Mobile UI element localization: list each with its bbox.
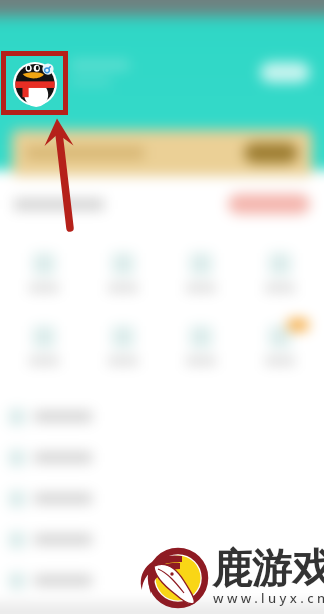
button[interactable]: [9, 560, 315, 601]
button[interactable]: [88, 309, 158, 382]
button[interactable]: [166, 236, 236, 309]
staticText: www.luyx.cn: [213, 589, 324, 607]
button[interactable]: [9, 519, 315, 560]
button[interactable]: [228, 194, 310, 214]
button[interactable]: Highlight avatar: [1, 51, 68, 115]
button[interactable]: [166, 309, 236, 382]
button[interactable]: [245, 309, 315, 382]
button[interactable]: [260, 62, 310, 83]
button[interactable]: [9, 309, 79, 382]
button[interactable]: [9, 236, 79, 309]
button[interactable]: User avatar: [13, 62, 57, 106]
button[interactable]: [88, 236, 158, 309]
button[interactable]: [9, 478, 315, 519]
button[interactable]: [9, 437, 315, 478]
button[interactable]: [12, 130, 312, 176]
button[interactable]: [9, 396, 315, 437]
button[interactable]: [245, 236, 315, 309]
staticText: 鹿游戏: [212, 543, 324, 593]
